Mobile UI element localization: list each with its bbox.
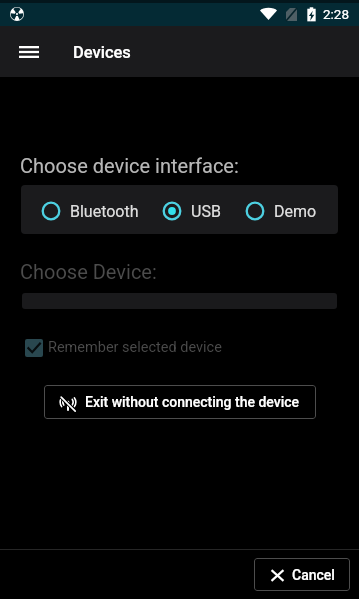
staticText: Devices	[73, 43, 131, 62]
staticText: Exit without connecting the device	[85, 394, 300, 410]
button[interactable]: Cancel	[254, 558, 350, 591]
button[interactable]: Bluetooth	[41, 185, 139, 234]
staticText: Demo	[274, 202, 317, 221]
button[interactable]: Demo	[245, 185, 317, 234]
staticText: 2:28	[323, 6, 350, 22]
staticText: Bluetooth	[70, 202, 139, 221]
staticText: Choose device interface:	[20, 154, 239, 177]
staticText: USB	[191, 202, 221, 221]
button[interactable]: Open navigation drawer	[8, 32, 48, 72]
staticText: Cancel	[292, 567, 335, 583]
button[interactable]: Remember selected device	[21, 334, 222, 361]
staticText: Choose Device:	[20, 260, 157, 283]
staticText: Remember selected device	[48, 339, 222, 356]
button[interactable]: Exit without connecting the device	[44, 385, 316, 419]
button[interactable]: USB	[162, 185, 221, 234]
